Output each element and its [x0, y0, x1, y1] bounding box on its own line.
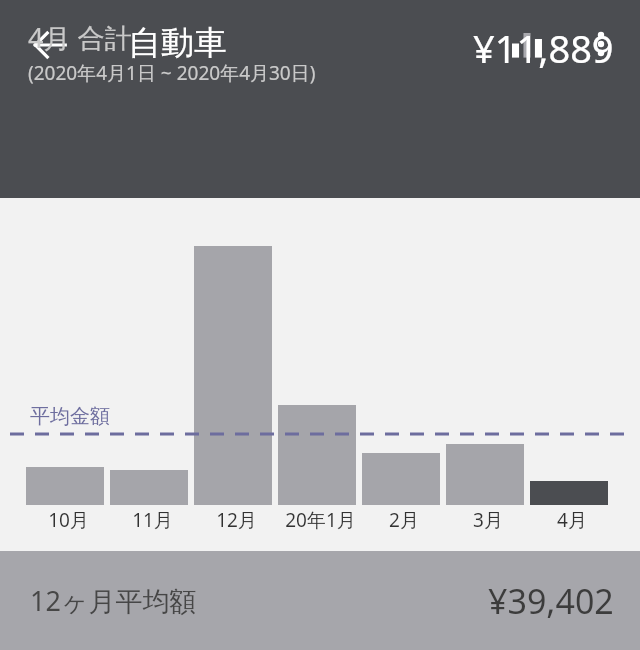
- staticText: 2月: [389, 507, 419, 533]
- staticText: 11月: [132, 507, 173, 533]
- staticText: 12ヶ月平均額: [30, 582, 197, 619]
- button[interactable]: Chart: [497, 15, 557, 75]
- staticText: 4月 合計: [28, 19, 132, 56]
- staticText: 10月: [48, 507, 89, 533]
- staticText: ¥39,402: [488, 578, 614, 624]
- staticText: 20年1月: [285, 507, 356, 533]
- staticText: 3月: [473, 507, 503, 533]
- button[interactable]: Back: [20, 15, 80, 75]
- button[interactable]: 12ヶ月平均額: [0, 551, 640, 650]
- staticText: ¥11,889: [473, 22, 614, 74]
- staticText: 12月: [216, 507, 257, 533]
- staticText: 4月: [557, 507, 587, 533]
- staticText: (2020年4月1日 ~ 2020年4月30日): [28, 60, 316, 86]
- staticText: 自動車: [128, 22, 227, 64]
- button[interactable]: More options: [572, 15, 630, 73]
- staticText: 平均金額: [30, 404, 110, 429]
